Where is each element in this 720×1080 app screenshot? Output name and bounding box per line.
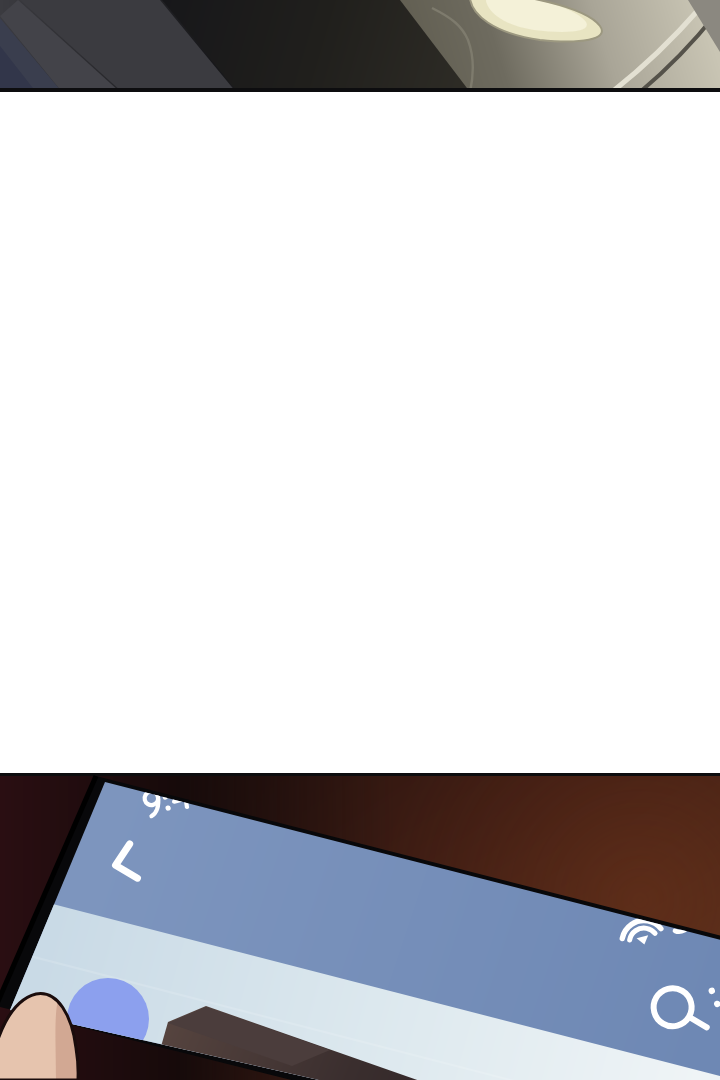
button[interactable]: Search [640,972,718,1050]
button[interactable]: Profile avatar [62,974,154,1066]
button[interactable]: Back [92,833,156,895]
